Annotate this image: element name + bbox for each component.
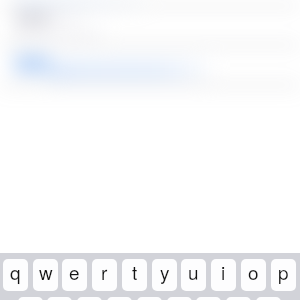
button[interactable]: f	[107, 297, 132, 300]
button[interactable]: s	[47, 297, 72, 300]
staticText: q	[10, 259, 21, 285]
staticText: i	[221, 259, 226, 285]
staticText: w	[39, 259, 53, 285]
button[interactable]: l	[256, 297, 281, 300]
button[interactable]: w	[33, 259, 58, 291]
button[interactable]: d	[77, 297, 102, 300]
button[interactable]: e	[62, 259, 87, 291]
button[interactable]: o	[241, 259, 266, 291]
button[interactable]: r	[92, 259, 117, 291]
button[interactable]: u	[181, 259, 206, 291]
staticText: e	[69, 259, 80, 285]
button[interactable]: t	[122, 259, 147, 291]
button[interactable]: k	[226, 297, 251, 300]
staticText: t	[132, 259, 138, 285]
button[interactable]: i	[211, 259, 236, 291]
staticText: o	[248, 259, 259, 285]
button[interactable]: q	[3, 259, 28, 291]
button[interactable]: p	[271, 259, 296, 291]
staticText: r	[101, 259, 108, 285]
button[interactable]: y	[152, 259, 177, 291]
button[interactable]: j	[196, 297, 221, 300]
button[interactable]: g	[137, 297, 162, 300]
staticText: y	[160, 259, 170, 285]
staticText: u	[188, 259, 199, 285]
button[interactable]: a	[18, 297, 43, 300]
button[interactable]: h	[167, 297, 192, 300]
staticText: p	[278, 259, 289, 285]
